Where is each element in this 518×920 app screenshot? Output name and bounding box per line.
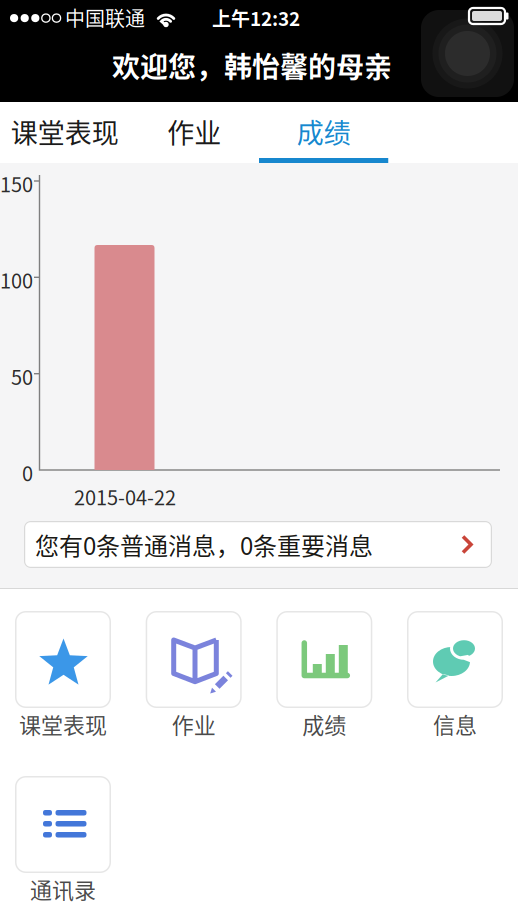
- button[interactable]: 作业: [129, 102, 259, 163]
- button[interactable]: 课堂表现: [15, 611, 111, 740]
- staticText: 通讯录: [30, 873, 96, 905]
- button[interactable]: 课堂表现: [0, 102, 129, 163]
- button[interactable]: 信息: [407, 611, 503, 740]
- button[interactable]: 作业: [146, 611, 242, 740]
- button[interactable]: 相机: [421, 10, 514, 97]
- button[interactable]: 成绩: [259, 102, 388, 163]
- staticText: 信息: [433, 708, 477, 740]
- staticText: 0: [22, 458, 33, 487]
- staticText: 作业: [167, 112, 221, 151]
- button[interactable]: 您有0条普通消息，0条重要消息: [24, 521, 492, 568]
- staticText: 欢迎您，韩怡馨的母亲: [112, 45, 392, 85]
- staticText: 150: [0, 169, 33, 198]
- staticText: 课堂表现: [11, 112, 119, 151]
- staticText: 作业: [172, 708, 216, 740]
- staticText: 中国联通: [65, 3, 145, 32]
- staticText: 上午12:32: [212, 4, 300, 31]
- staticText: 成绩: [302, 708, 346, 740]
- staticText: 您有0条普通消息，0条重要消息: [35, 527, 373, 562]
- button[interactable]: 通讯录: [15, 776, 111, 905]
- staticText: 成绩: [297, 112, 351, 151]
- button[interactable]: 成绩: [276, 611, 372, 740]
- staticText: 课堂表现: [19, 708, 107, 740]
- staticText: 50: [11, 362, 33, 391]
- staticText: 2015-04-22: [74, 482, 176, 511]
- staticText: 100: [0, 265, 33, 294]
